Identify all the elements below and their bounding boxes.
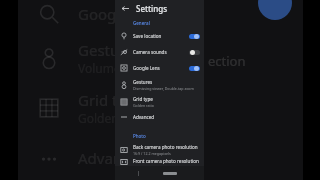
staticText: Settings [136, 3, 168, 14]
button[interactable]: Camera sounds [115, 44, 204, 60]
staticText: Grid typ [78, 90, 135, 110]
staticText: Google Lens suggestions [133, 65, 187, 71]
staticText: Back camera photo resolution [133, 144, 198, 150]
button[interactable]: Google [18, 0, 303, 36]
staticText: Gestures [133, 79, 153, 85]
staticText: Front camera photo resolution [133, 158, 199, 164]
button[interactable]: Advanced [115, 110, 204, 124]
button[interactable]: Back camera photo resolution [115, 141, 204, 158]
staticText: Dismissing viewer, Double-tap zoom [133, 86, 194, 91]
staticText: Save location [133, 33, 162, 39]
button[interactable]: Back [120, 3, 131, 14]
staticText: Advanced [133, 114, 155, 120]
button[interactable]: Google Lens suggestions [115, 60, 204, 76]
button[interactable]: Save location [115, 28, 204, 44]
staticText: Golden ratio [133, 103, 154, 108]
staticText: 16:9 / 12.2 megapixels [133, 151, 171, 156]
staticText: Advanc [78, 148, 130, 168]
staticText: Grid type [133, 96, 153, 102]
staticText: General [133, 20, 150, 26]
staticText: Google [78, 4, 129, 24]
button[interactable]: Gestures [115, 76, 204, 93]
staticText: ection [208, 52, 246, 70]
button[interactable]: Grid type [115, 93, 204, 110]
button[interactable]: Front camera photo resolution [115, 158, 204, 166]
button[interactable]: Grid typ [18, 86, 303, 130]
button[interactable]: Advanc [18, 136, 303, 180]
staticText: Camera sounds [133, 49, 167, 55]
button[interactable]: Gesture [18, 36, 303, 80]
staticText: Gesture [78, 40, 134, 60]
staticText: Volume k [78, 60, 131, 76]
staticText: Photo [133, 133, 146, 139]
staticText: Golden r [78, 110, 127, 126]
